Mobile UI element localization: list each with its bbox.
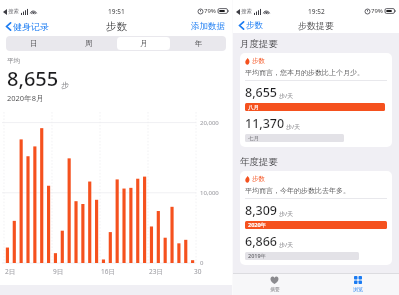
button[interactable]: 健身记录 — [4, 19, 51, 34]
staticText: 11,370 — [245, 115, 285, 132]
staticText: 6,866 — [245, 233, 278, 250]
staticText: 步/天 — [279, 241, 294, 249]
button[interactable]: 步数 — [240, 171, 392, 265]
staticText: 健身记录 — [13, 21, 49, 32]
staticText: 日 — [30, 39, 38, 48]
staticText: 79% — [204, 7, 216, 15]
button[interactable]: 步数 — [240, 53, 392, 147]
staticText: 添加数据 — [191, 21, 225, 32]
staticText: 步/天 — [279, 210, 294, 218]
staticText: 2020年 — [248, 221, 267, 229]
button[interactable]: 日 — [7, 37, 60, 50]
staticText: 摘要 — [270, 286, 280, 292]
button[interactable]: 月 — [117, 37, 170, 50]
staticText: 8,309 — [245, 202, 278, 219]
staticText: 浏览 — [353, 286, 363, 292]
staticText: 20,000 — [200, 119, 219, 127]
staticText: 年度提要 — [240, 156, 278, 168]
staticText: 8,655 — [245, 84, 278, 101]
staticText: 步数 — [252, 175, 265, 183]
button[interactable]: 周 — [62, 37, 115, 50]
staticText: 步 — [61, 80, 69, 90]
staticText: 年 — [195, 39, 203, 48]
staticText: 月度提要 — [240, 38, 278, 50]
staticText: 平均而言，您本月的步数比上个月少。 — [245, 68, 364, 77]
staticText: 搜索 — [241, 8, 252, 15]
button[interactable]: 摘要 — [233, 273, 316, 295]
button[interactable]: 添加数据 — [189, 19, 227, 34]
staticText: 七月 — [248, 135, 259, 142]
staticText: 23日 — [149, 267, 163, 276]
staticText: 步/天 — [279, 92, 294, 100]
staticText: 步/天 — [286, 123, 301, 131]
staticText: 2020年8月 — [7, 93, 44, 103]
staticText: 8,655 — [7, 65, 59, 92]
button[interactable]: 浏览 — [316, 273, 399, 295]
staticText: 19:51 — [108, 7, 125, 16]
staticText: 月 — [140, 39, 148, 48]
staticText: 2019年 — [248, 252, 267, 260]
staticText: 搜索 — [8, 8, 19, 15]
staticText: 步数提要 — [298, 20, 334, 31]
staticText: 79% — [371, 7, 383, 15]
staticText: 10,000 — [200, 189, 219, 197]
staticText: 2日 — [5, 267, 16, 276]
staticText: 16日 — [101, 267, 115, 276]
button[interactable]: 步数 — [237, 18, 265, 33]
staticText: 0 — [200, 259, 204, 267]
staticText: 30 — [194, 267, 202, 276]
staticText: 步数 — [246, 20, 263, 31]
button[interactable]: 年 — [172, 37, 225, 50]
staticText: 19:52 — [308, 7, 325, 16]
staticText: 步数 — [106, 20, 127, 33]
staticText: 9日 — [53, 267, 64, 276]
staticText: 周 — [85, 39, 93, 48]
staticText: 步数 — [252, 57, 265, 65]
staticText: 平均 — [7, 57, 20, 65]
staticText: 八月 — [248, 104, 259, 111]
staticText: 平均而言，今年的步数比去年多。 — [245, 186, 350, 195]
